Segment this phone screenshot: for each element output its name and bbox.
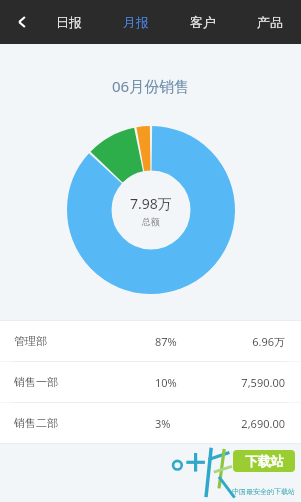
staticText: 87% [155, 334, 177, 349]
staticText: 6.96万 [252, 334, 285, 349]
staticText: 3% [155, 416, 171, 431]
button[interactable]: Back [0, 0, 44, 44]
button[interactable]: 月报 [115, 0, 157, 44]
staticText: 下载站 [245, 453, 284, 469]
staticText: 06月份销售 [112, 76, 190, 96]
staticText: 销售一部 [14, 375, 58, 389]
staticText: 客户 [190, 14, 216, 30]
button[interactable]: 客户 [182, 0, 224, 44]
staticText: 管理部 [14, 334, 47, 348]
staticText: 销售二部 [14, 416, 58, 430]
staticText: 日报 [56, 14, 82, 30]
staticText: 2,690.00 [241, 416, 285, 431]
button[interactable]: 管理部 [0, 321, 301, 361]
staticText: 中国最安全的下载站 [232, 487, 295, 496]
staticText: 产品 [257, 14, 283, 30]
button[interactable]: 销售二部 [0, 403, 301, 443]
staticText: 7,590.00 [241, 375, 285, 390]
staticText: 10% [155, 375, 177, 390]
button[interactable]: 日报 [48, 0, 90, 44]
staticText: 月报 [123, 14, 149, 30]
staticText: 总额 [142, 216, 160, 227]
staticText: 7.98万 [130, 194, 172, 213]
button[interactable]: 销售一部 [0, 362, 301, 402]
button[interactable]: 产品 [249, 0, 291, 44]
